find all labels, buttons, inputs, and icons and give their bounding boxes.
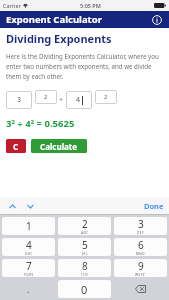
button[interactable]: 2	[95, 90, 117, 104]
staticText: 4	[26, 238, 32, 252]
button[interactable]: C	[6, 139, 26, 153]
staticText: 7	[26, 259, 32, 273]
staticText: 5	[82, 238, 88, 252]
staticText: 0	[81, 282, 88, 297]
staticText: Here is the Dividing Exponents Calculato…	[6, 52, 163, 81]
button[interactable]: Next field	[23, 199, 37, 213]
button[interactable]: 3	[114, 217, 167, 235]
staticText: 32 ÷ 42 = 0.5625	[6, 117, 75, 130]
staticText: Done	[144, 201, 164, 211]
staticText: Carrier	[3, 2, 21, 9]
staticText: 9	[138, 259, 144, 273]
button[interactable]: 6	[114, 238, 167, 256]
staticText: MNO	[136, 252, 146, 256]
staticText: C	[13, 141, 19, 152]
staticText: .	[27, 283, 30, 295]
staticText: 2	[82, 217, 88, 231]
staticText: 6	[138, 238, 144, 252]
button[interactable]: 7	[2, 259, 55, 277]
button[interactable]: 0	[58, 280, 111, 298]
staticText: 3	[138, 217, 144, 231]
staticText: 5:05 PM	[80, 2, 101, 9]
button[interactable]: Previous field	[5, 199, 19, 213]
button[interactable]: 4	[66, 91, 92, 109]
button[interactable]: 1	[2, 217, 55, 235]
button[interactable]: Delete	[114, 280, 167, 298]
button[interactable]: Info	[150, 13, 164, 27]
button[interactable]: Done	[144, 201, 164, 211]
staticText: Exponent Calculator	[6, 13, 102, 26]
button[interactable]: 8	[58, 259, 111, 277]
staticText: 8	[82, 259, 88, 273]
button[interactable]: 3	[6, 91, 32, 109]
staticText: DEF	[137, 231, 144, 235]
staticText: 2	[104, 93, 108, 101]
staticText: Calculate	[40, 141, 78, 152]
button[interactable]: Exponent Calculator	[0, 11, 169, 28]
staticText: ABC	[81, 231, 89, 235]
staticText: Dividing Exponents	[6, 31, 112, 46]
staticText: 2	[44, 93, 48, 101]
button[interactable]: 2	[35, 90, 57, 104]
button[interactable]: 2	[58, 217, 111, 235]
staticText: WXYZ	[135, 273, 146, 277]
button[interactable]: 4	[2, 238, 55, 256]
staticText: 1	[26, 219, 32, 233]
button[interactable]: 9	[114, 259, 167, 277]
staticText: 3	[17, 95, 22, 105]
staticText: TUV	[81, 273, 89, 277]
staticText: GHI	[25, 252, 32, 256]
staticText: JKL	[82, 252, 88, 256]
button[interactable]: Calculate	[31, 139, 87, 153]
staticText: PQRS	[24, 273, 34, 277]
button[interactable]: 5	[58, 238, 111, 256]
button[interactable]: Decimal point	[2, 280, 55, 298]
staticText: ÷	[59, 95, 64, 105]
staticText: 4	[76, 95, 81, 105]
